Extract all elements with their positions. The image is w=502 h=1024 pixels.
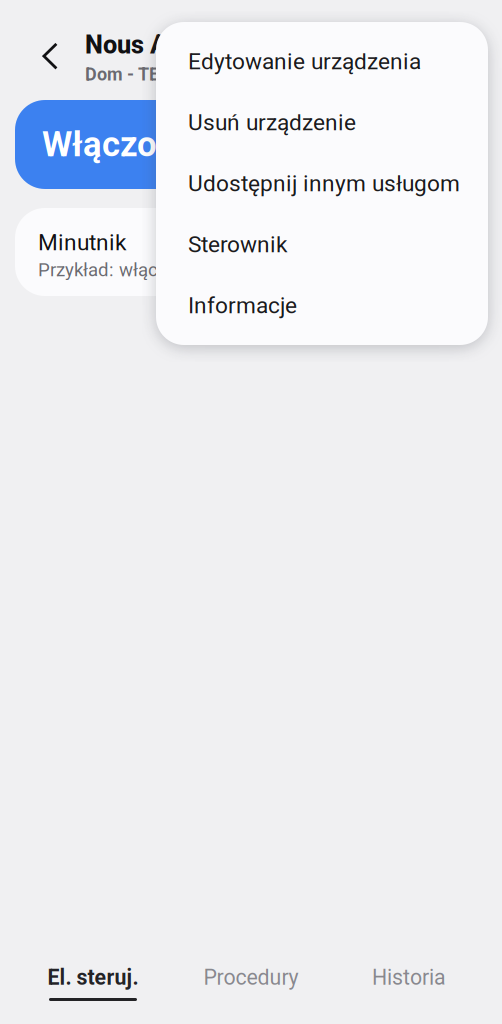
button[interactable]: El. steruj. [14, 966, 172, 1006]
button[interactable]: Back [28, 34, 72, 78]
button[interactable]: Historia [330, 966, 488, 1006]
staticText: Nous A1T [85, 30, 198, 60]
button[interactable]: Udostępnij innym usługom [156, 153, 488, 214]
button[interactable]: Informacje [156, 275, 488, 336]
staticText: Procedury [203, 965, 298, 990]
button[interactable]: Procedury [172, 966, 330, 1006]
staticText: Dom - TEST [85, 64, 181, 85]
button[interactable]: Edytowanie urządzenia [156, 31, 488, 92]
button[interactable]: Minutnik [15, 208, 487, 296]
button[interactable]: Usuń urządzenie [156, 92, 488, 153]
staticText: Włączono [42, 124, 196, 165]
button[interactable]: Sterownik [156, 214, 488, 275]
staticText: El. steruj. [47, 965, 138, 990]
staticText: Edytowanie urządzenia [188, 48, 421, 75]
staticText: Minutnik [38, 229, 126, 256]
staticText: Informacje [188, 292, 297, 319]
staticText: Przykład: włącz na 10 minut [38, 259, 269, 281]
staticText: Sterownik [188, 231, 287, 258]
staticText: Udostępnij innym usługom [188, 170, 460, 197]
staticText: Usuń urządzenie [188, 109, 356, 136]
button[interactable]: Włączono [15, 100, 487, 189]
staticText: Historia [372, 965, 446, 990]
